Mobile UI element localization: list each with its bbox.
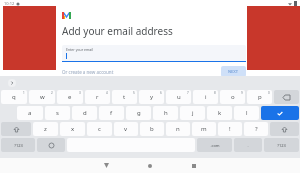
button[interactable]: c bbox=[87, 122, 112, 136]
button[interactable]: ! bbox=[218, 122, 242, 136]
staticText: 0 bbox=[268, 91, 270, 95]
staticText: 1 bbox=[23, 91, 25, 95]
staticText: v bbox=[124, 125, 128, 133]
button[interactable]: NEXT bbox=[221, 66, 246, 77]
button[interactable]: .com bbox=[197, 138, 232, 152]
staticText: m bbox=[201, 125, 207, 133]
button[interactable]: n bbox=[166, 122, 190, 136]
staticText: h bbox=[164, 109, 168, 117]
button[interactable]: q bbox=[1, 90, 27, 104]
staticText: r bbox=[96, 93, 99, 101]
staticText: 9 bbox=[241, 91, 243, 95]
button[interactable]: ? bbox=[244, 122, 268, 136]
button[interactable]: ?123 bbox=[264, 138, 299, 152]
button[interactable]: Shift bbox=[270, 122, 299, 136]
staticText: 2 bbox=[51, 91, 53, 95]
button[interactable]: f bbox=[99, 106, 124, 120]
staticText: 6 bbox=[160, 91, 162, 95]
staticText: q bbox=[12, 93, 16, 101]
staticText: g bbox=[137, 109, 141, 117]
button[interactable]: Enter your email bbox=[62, 45, 246, 61]
staticText: Enter your email bbox=[66, 47, 94, 52]
staticText: w bbox=[40, 93, 45, 101]
staticText: z bbox=[44, 125, 47, 133]
button[interactable]: a bbox=[17, 106, 43, 120]
button[interactable]: v bbox=[114, 122, 138, 136]
staticText: s bbox=[56, 109, 59, 117]
staticText: ?123 bbox=[277, 143, 286, 148]
staticText: . bbox=[247, 143, 249, 148]
staticText: a bbox=[28, 109, 32, 117]
staticText: t bbox=[123, 93, 126, 101]
button[interactable]: e bbox=[57, 90, 83, 104]
staticText: NEXT bbox=[228, 69, 239, 74]
button[interactable]: Back bbox=[93, 158, 119, 173]
staticText: 7 bbox=[187, 91, 189, 95]
staticText: j bbox=[192, 109, 194, 117]
button[interactable]: l bbox=[234, 106, 259, 120]
staticText: k bbox=[218, 109, 222, 117]
button[interactable]: Enter bbox=[261, 106, 299, 120]
button[interactable]: r bbox=[85, 90, 110, 104]
button[interactable]: b bbox=[140, 122, 164, 136]
staticText: u bbox=[177, 93, 181, 101]
staticText: 10:12 bbox=[4, 1, 15, 6]
staticText: 8 bbox=[214, 91, 216, 95]
button[interactable]: u bbox=[166, 90, 191, 104]
button[interactable]: Backspace bbox=[274, 90, 299, 104]
staticText: p bbox=[258, 93, 262, 101]
staticText: e bbox=[68, 93, 72, 101]
button[interactable]: j bbox=[180, 106, 205, 120]
staticText: .com bbox=[210, 143, 220, 148]
staticText: 4 bbox=[106, 91, 108, 95]
staticText: ! bbox=[229, 125, 231, 133]
staticText: l bbox=[246, 109, 248, 117]
button[interactable]: y bbox=[139, 90, 164, 104]
staticText: Add your email address bbox=[62, 24, 173, 38]
button[interactable]: t bbox=[112, 90, 137, 104]
staticText: c bbox=[98, 125, 101, 133]
button[interactable]: w bbox=[29, 90, 55, 104]
button[interactable]: m bbox=[192, 122, 216, 136]
button[interactable]: d bbox=[72, 106, 97, 120]
staticText: o bbox=[231, 93, 235, 101]
staticText: ?123 bbox=[14, 143, 23, 148]
button[interactable]: Expand suggestions bbox=[8, 79, 16, 87]
staticText: 5 bbox=[133, 91, 135, 95]
staticText: Or create a new account bbox=[62, 69, 114, 75]
button[interactable]: Emoji bbox=[37, 138, 65, 152]
button[interactable]: Home bbox=[137, 158, 163, 173]
staticText: i bbox=[205, 93, 207, 101]
staticText: y bbox=[150, 93, 154, 101]
staticText: ? bbox=[255, 125, 258, 133]
staticText: f bbox=[110, 109, 113, 117]
button[interactable]: o bbox=[220, 90, 245, 104]
button[interactable]: ?123 bbox=[1, 138, 35, 152]
button[interactable]: h bbox=[153, 106, 178, 120]
button[interactable]: Shift bbox=[1, 122, 31, 136]
button[interactable]: k bbox=[207, 106, 232, 120]
staticText: x bbox=[71, 125, 75, 133]
button[interactable]: s bbox=[45, 106, 70, 120]
button[interactable]: Or create a new account bbox=[62, 68, 114, 76]
button[interactable]: z bbox=[33, 122, 58, 136]
button[interactable]: x bbox=[60, 122, 85, 136]
staticText: b bbox=[150, 125, 154, 133]
staticText: 3 bbox=[79, 91, 81, 95]
button[interactable]: Recents bbox=[181, 158, 207, 173]
button[interactable]: p bbox=[247, 90, 272, 104]
button[interactable]: i bbox=[193, 90, 218, 104]
button[interactable]: g bbox=[126, 106, 151, 120]
staticText: d bbox=[83, 109, 87, 117]
staticText: n bbox=[176, 125, 180, 133]
